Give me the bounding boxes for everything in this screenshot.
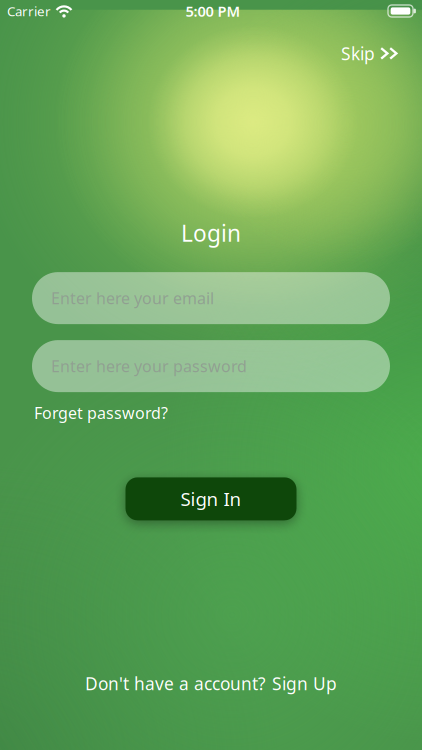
button[interactable]: Sign Up	[272, 672, 337, 695]
staticText: Sign Up	[272, 672, 337, 695]
button[interactable]: Skip	[341, 42, 398, 65]
staticText: Sign In	[180, 486, 241, 511]
button[interactable]: Enter here your email	[32, 272, 390, 324]
button[interactable]: Forget password?	[34, 402, 168, 423]
staticText: Forget password?	[34, 402, 168, 423]
button[interactable]: Sign In	[125, 477, 296, 520]
staticText: Carrier	[7, 2, 51, 20]
staticText: Enter here your password	[51, 355, 247, 377]
staticText: Don't have a account?	[85, 672, 266, 695]
staticText: 5:00 PM	[185, 1, 240, 21]
staticText: Login	[181, 218, 241, 248]
staticText: Skip	[341, 42, 375, 65]
staticText: Enter here your email	[51, 287, 214, 309]
button[interactable]: Enter here your password	[32, 340, 390, 392]
